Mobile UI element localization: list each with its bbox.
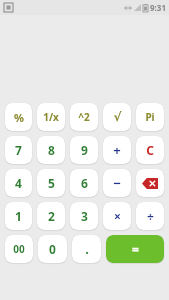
button[interactable]: . bbox=[72, 235, 101, 263]
staticText: 9:31 bbox=[150, 2, 166, 13]
staticText: 1 bbox=[15, 208, 22, 224]
staticText: 0 bbox=[49, 241, 56, 257]
staticText: 00 bbox=[13, 242, 25, 256]
staticText: ÷ bbox=[147, 208, 154, 224]
staticText: 2 bbox=[48, 208, 55, 224]
staticText: . bbox=[85, 240, 89, 258]
staticText: 8 bbox=[48, 142, 55, 158]
staticText: = bbox=[132, 241, 139, 257]
button[interactable]: 0 bbox=[38, 235, 67, 263]
button[interactable]: − bbox=[103, 169, 131, 197]
button[interactable]: = bbox=[106, 235, 164, 263]
staticText: 7 bbox=[15, 142, 22, 158]
button[interactable]: √ bbox=[103, 103, 131, 131]
staticText: 6 bbox=[81, 175, 88, 191]
staticText: C bbox=[146, 142, 154, 158]
button[interactable]: ^2 bbox=[70, 103, 98, 131]
button[interactable]: + bbox=[103, 136, 131, 164]
staticText: × bbox=[114, 208, 121, 224]
staticText: + bbox=[113, 141, 121, 159]
button[interactable]: 4 bbox=[5, 169, 32, 197]
staticText: − bbox=[113, 174, 121, 192]
button[interactable]: 00 bbox=[5, 235, 33, 263]
button[interactable]: % bbox=[5, 103, 32, 131]
staticText: Pi bbox=[145, 110, 155, 124]
button[interactable]: 1/x bbox=[37, 103, 65, 131]
staticText: 9 bbox=[81, 142, 88, 158]
button[interactable]: 3 bbox=[70, 202, 98, 230]
button[interactable]: Pi bbox=[136, 103, 164, 131]
button[interactable]: 5 bbox=[37, 169, 65, 197]
staticText: 5 bbox=[48, 175, 55, 191]
button[interactable]: × bbox=[103, 202, 131, 230]
button[interactable]: ÷ bbox=[136, 202, 164, 230]
button[interactable]: 7 bbox=[5, 136, 32, 164]
button[interactable]: 6 bbox=[70, 169, 98, 197]
button[interactable]: Backspace bbox=[136, 169, 164, 197]
button[interactable]: 8 bbox=[37, 136, 65, 164]
staticText: ^2 bbox=[78, 110, 90, 124]
button[interactable]: 9 bbox=[70, 136, 98, 164]
staticText: 3 bbox=[81, 208, 88, 224]
button[interactable]: 2 bbox=[37, 202, 65, 230]
staticText: 1/x bbox=[43, 110, 59, 124]
staticText: % bbox=[14, 110, 24, 125]
staticText: √ bbox=[113, 110, 122, 124]
button[interactable]: 1 bbox=[5, 202, 32, 230]
button[interactable]: C bbox=[136, 136, 164, 164]
staticText: 4 bbox=[15, 175, 22, 191]
